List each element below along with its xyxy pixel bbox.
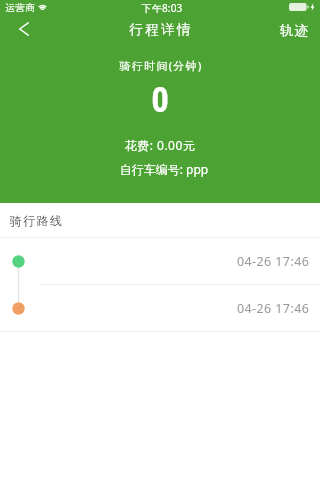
staticText: 运营商 (5, 2, 35, 14)
staticText: 行程详情 (1, 21, 320, 38)
staticText: 下午8:03 (2, 1, 320, 15)
staticText: 0 (0, 80, 320, 121)
staticText: 花费: 0.00元 (0, 137, 320, 153)
staticText: 04-26 17:46 (237, 253, 310, 270)
staticText: 04-26 17:46 (237, 300, 310, 317)
staticText: 骑行时间(分钟) (1, 58, 320, 73)
button[interactable]: 04-26 17:46 (0, 238, 320, 285)
button[interactable]: 轨迹 (270, 17, 316, 43)
button[interactable]: 04-26 17:46 (0, 285, 320, 332)
staticText: 轨迹 (279, 22, 309, 39)
staticText: 自行车编号: ppp (4, 161, 320, 177)
button[interactable]: Back (0, 16, 48, 42)
staticText: 骑行路线 (10, 213, 64, 228)
